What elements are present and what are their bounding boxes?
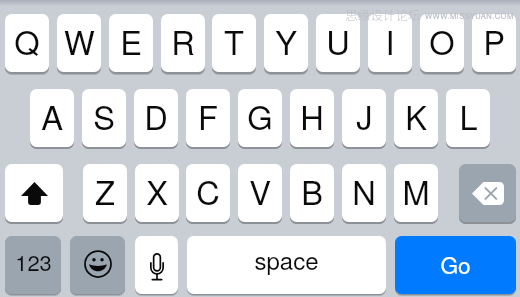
button[interactable]: H <box>290 89 334 147</box>
button[interactable]: R <box>161 14 205 72</box>
staticText: B <box>301 168 323 215</box>
button[interactable]: 123 <box>5 236 61 294</box>
button[interactable]: P <box>472 14 516 72</box>
staticText: L <box>459 93 478 140</box>
staticText: X <box>146 168 168 215</box>
staticText: WWW.MISSYUAN.COM <box>425 10 514 21</box>
button[interactable]: G <box>238 89 282 147</box>
staticText: U <box>326 18 350 65</box>
staticText: H <box>300 93 324 140</box>
staticText: J <box>356 93 373 140</box>
button[interactable]: K <box>394 89 438 147</box>
staticText: Go <box>440 248 471 280</box>
button[interactable]: V <box>238 164 282 222</box>
button[interactable]: B <box>290 164 334 222</box>
staticText: G <box>247 93 273 140</box>
button[interactable]: Go <box>395 236 516 294</box>
staticText: M <box>402 168 430 215</box>
staticText: P <box>483 18 505 65</box>
button[interactable]: Shift <box>5 164 63 222</box>
staticText: E <box>120 18 142 65</box>
staticText: N <box>352 168 376 215</box>
staticText: R <box>171 18 195 65</box>
button[interactable]: N <box>342 164 386 222</box>
button[interactable]: S <box>82 89 126 147</box>
staticText: F <box>198 93 218 140</box>
button[interactable]: space <box>187 236 386 294</box>
button[interactable]: X <box>135 164 179 222</box>
button[interactable]: Z <box>83 164 127 222</box>
staticText: W <box>64 18 95 65</box>
button[interactable]: E <box>109 14 153 72</box>
staticText: C <box>196 168 220 215</box>
staticText: T <box>224 18 244 65</box>
staticText: O <box>429 18 455 65</box>
button[interactable]: U <box>316 14 360 72</box>
button[interactable]: A <box>30 89 74 147</box>
staticText: V <box>249 168 271 215</box>
button[interactable]: L <box>446 89 490 147</box>
button[interactable]: Q <box>5 14 49 72</box>
button[interactable]: W <box>57 14 101 72</box>
staticText: Y <box>275 18 297 65</box>
staticText: S <box>93 93 115 140</box>
staticText: A <box>41 93 63 140</box>
button[interactable]: D <box>134 89 178 147</box>
staticText: D <box>144 93 168 140</box>
staticText: K <box>405 93 427 140</box>
button[interactable]: Dictate <box>135 236 178 294</box>
staticText: Q <box>14 18 40 65</box>
staticText: space <box>254 242 319 276</box>
button[interactable]: O <box>420 14 464 72</box>
staticText: Z <box>95 168 115 215</box>
button[interactable]: Backspace <box>459 164 516 222</box>
button[interactable]: Y <box>264 14 308 72</box>
button[interactable]: C <box>186 164 230 222</box>
staticText: I <box>385 18 395 65</box>
button[interactable]: J <box>342 89 386 147</box>
button[interactable]: T <box>212 14 256 72</box>
button[interactable]: F <box>186 89 230 147</box>
button[interactable]: I <box>368 14 412 72</box>
button[interactable]: M <box>394 164 438 222</box>
button[interactable]: Emoji <box>70 236 125 294</box>
staticText: 思缘设计论坛 <box>345 5 421 23</box>
staticText: 123 <box>15 246 52 278</box>
